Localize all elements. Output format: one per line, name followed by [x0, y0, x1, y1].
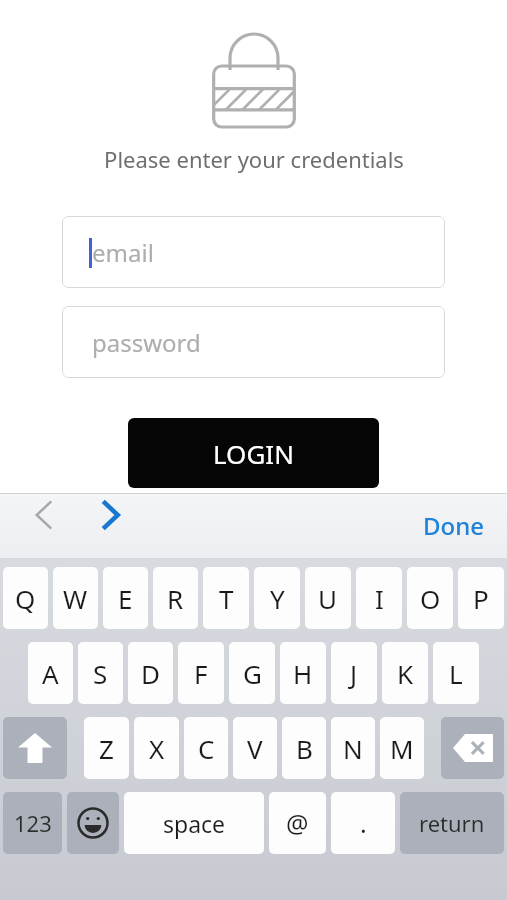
button[interactable]: O — [407, 567, 453, 629]
staticText: space — [163, 808, 226, 839]
staticText: Z — [99, 731, 114, 766]
button[interactable]: LOGIN — [128, 418, 379, 488]
button[interactable]: email — [62, 216, 445, 288]
button[interactable]: H — [280, 642, 326, 704]
button[interactable]: M — [380, 717, 424, 779]
staticText: F — [194, 656, 208, 691]
staticText: B — [296, 731, 313, 766]
staticText: X — [149, 731, 165, 766]
staticText: email — [92, 236, 154, 269]
button[interactable]: return — [400, 792, 504, 854]
button[interactable]: Q — [3, 567, 48, 629]
button[interactable]: P — [458, 567, 504, 629]
button[interactable]: X — [134, 717, 179, 779]
button[interactable]: Z — [84, 717, 129, 779]
staticText: H — [293, 656, 313, 691]
button[interactable]: T — [203, 567, 249, 629]
staticText: A — [42, 656, 59, 691]
staticText: return — [419, 808, 485, 838]
staticText: D — [141, 656, 160, 691]
button[interactable]: A — [28, 642, 73, 704]
button[interactable]: S — [78, 642, 123, 704]
staticText: V — [247, 731, 263, 766]
button[interactable]: Done — [423, 509, 485, 542]
button[interactable]: E — [103, 567, 148, 629]
staticText: LOGIN — [213, 436, 294, 471]
button[interactable]: F — [178, 642, 224, 704]
button[interactable]: I — [356, 567, 402, 629]
button[interactable]: Backspace — [441, 717, 504, 779]
button[interactable]: . — [331, 792, 395, 854]
button[interactable]: Next field — [88, 493, 132, 537]
staticText: T — [219, 581, 234, 616]
button[interactable]: V — [233, 717, 277, 779]
staticText: Done — [423, 509, 485, 542]
staticText: W — [63, 581, 88, 616]
staticText: @ — [286, 806, 309, 840]
button[interactable]: N — [331, 717, 375, 779]
button[interactable]: L — [433, 642, 479, 704]
button[interactable]: G — [229, 642, 275, 704]
button[interactable]: R — [153, 567, 198, 629]
staticText: password — [92, 326, 201, 359]
staticText: P — [473, 581, 489, 616]
button[interactable]: J — [331, 642, 377, 704]
button[interactable]: Emoji — [67, 792, 119, 854]
button[interactable]: B — [282, 717, 326, 779]
staticText: E — [118, 581, 133, 616]
staticText: N — [343, 731, 363, 766]
staticText: L — [449, 656, 463, 691]
staticText: R — [167, 581, 184, 616]
button[interactable]: Shift — [3, 717, 67, 779]
staticText: Please enter your credentials — [104, 144, 404, 174]
button[interactable]: U — [305, 567, 351, 629]
button[interactable]: D — [128, 642, 173, 704]
staticText: Y — [270, 581, 285, 616]
staticText: U — [318, 581, 338, 616]
staticText: 123 — [14, 808, 52, 838]
staticText: I — [375, 581, 384, 616]
staticText: O — [420, 581, 441, 616]
staticText: K — [397, 656, 414, 691]
button[interactable]: 123 — [3, 792, 62, 854]
staticText: Q — [15, 581, 36, 616]
staticText: . — [360, 806, 367, 840]
button[interactable]: password — [62, 306, 445, 378]
button[interactable]: Y — [254, 567, 300, 629]
staticText: G — [243, 656, 262, 691]
button[interactable]: @ — [269, 792, 326, 854]
button[interactable]: Previous field — [22, 493, 66, 537]
staticText: J — [350, 656, 358, 691]
staticText: C — [198, 731, 215, 766]
staticText: M — [390, 731, 414, 766]
button[interactable]: space — [124, 792, 264, 854]
button[interactable]: C — [184, 717, 228, 779]
button[interactable]: W — [53, 567, 98, 629]
staticText: S — [93, 656, 108, 691]
button[interactable]: K — [382, 642, 428, 704]
